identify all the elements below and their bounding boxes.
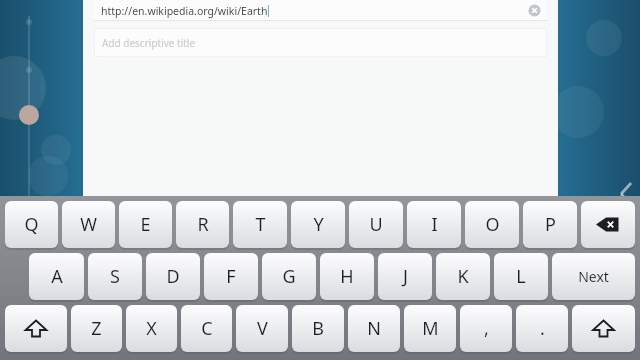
staticText: . [540,316,545,341]
button[interactable]: E [119,201,172,248]
button[interactable]: , [460,305,512,352]
staticText: Q [24,212,39,237]
button[interactable]: I [407,201,461,248]
staticText: D [166,264,180,289]
staticText: M [422,316,439,341]
staticText: Add descriptive title [102,36,196,50]
button[interactable]: L [494,253,548,300]
button[interactable]: M [404,305,456,352]
button[interactable]: Y [291,201,345,248]
staticText: H [340,264,354,289]
staticText: F [226,264,236,289]
button[interactable]: B [292,305,344,352]
staticText: W [80,212,97,237]
button[interactable]: X [126,305,177,352]
staticText: Next [578,267,609,286]
button[interactable]: W [62,201,115,248]
staticText: Y [313,212,324,237]
button[interactable]: Clear text [528,4,541,17]
button[interactable]: . [516,305,568,352]
button[interactable]: N [348,305,400,352]
button[interactable]: A [29,253,84,300]
button[interactable]: Back [611,173,637,215]
staticText: http://en.wikipedia.org/wiki/Earth [101,4,268,18]
button[interactable]: Add descriptive title [94,28,547,57]
button[interactable]: Shift [572,305,635,352]
staticText: A [51,264,63,289]
button[interactable]: O [465,201,519,248]
staticText: G [282,264,296,289]
staticText: B [312,316,324,341]
button[interactable]: U [349,201,403,248]
button[interactable]: V [236,305,288,352]
staticText: K [457,264,469,289]
button[interactable]: Next [552,253,635,300]
button[interactable]: C [181,305,232,352]
staticText: T [255,212,266,237]
button[interactable]: G [262,253,316,300]
staticText: V [257,316,268,341]
button[interactable]: Q [5,201,58,248]
staticText: X [146,316,157,341]
button[interactable]: D [146,253,200,300]
button[interactable]: T [233,201,287,248]
button[interactable]: Z [71,305,122,352]
button[interactable]: R [176,201,229,248]
staticText: I [431,212,438,237]
button[interactable]: K [436,253,490,300]
button[interactable]: J [378,253,432,300]
staticText: L [516,264,526,289]
staticText: R [197,212,209,237]
staticText: N [367,316,381,341]
button[interactable]: http://en.wikipedia.org/wiki/Earth [94,0,547,21]
button[interactable]: H [320,253,374,300]
button[interactable]: F [204,253,258,300]
staticText: U [369,212,383,237]
staticText: E [140,212,151,237]
staticText: O [485,212,500,237]
staticText: , [484,316,489,341]
staticText: S [110,264,120,289]
button[interactable]: Backspace [581,201,635,248]
button[interactable]: S [88,253,142,300]
button[interactable]: P [523,201,577,248]
staticText: P [545,212,556,237]
staticText: C [201,316,213,341]
staticText: Z [91,316,102,341]
button[interactable]: Shift [5,305,67,352]
staticText: J [403,264,408,289]
